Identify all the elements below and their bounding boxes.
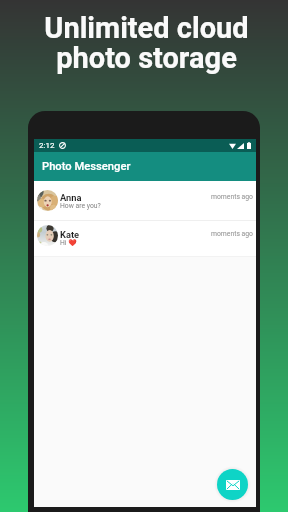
staticText: Anna xyxy=(60,192,82,203)
staticText: How are you? xyxy=(60,202,101,210)
staticText: Photo Messenger xyxy=(42,160,131,173)
staticText: Unlimited cloud photo storage xyxy=(44,11,249,75)
staticText: Hi ❤ xyxy=(60,239,77,247)
button[interactable]: Anna xyxy=(34,181,256,220)
staticText: Kate xyxy=(60,229,80,240)
button[interactable]: Kate xyxy=(34,221,256,256)
staticText: moments ago xyxy=(211,193,253,201)
staticText: 2:12 xyxy=(39,141,55,150)
button[interactable]: New message xyxy=(217,469,248,500)
staticText: moments ago xyxy=(211,230,253,238)
button[interactable]: Photo Messenger xyxy=(34,152,256,181)
